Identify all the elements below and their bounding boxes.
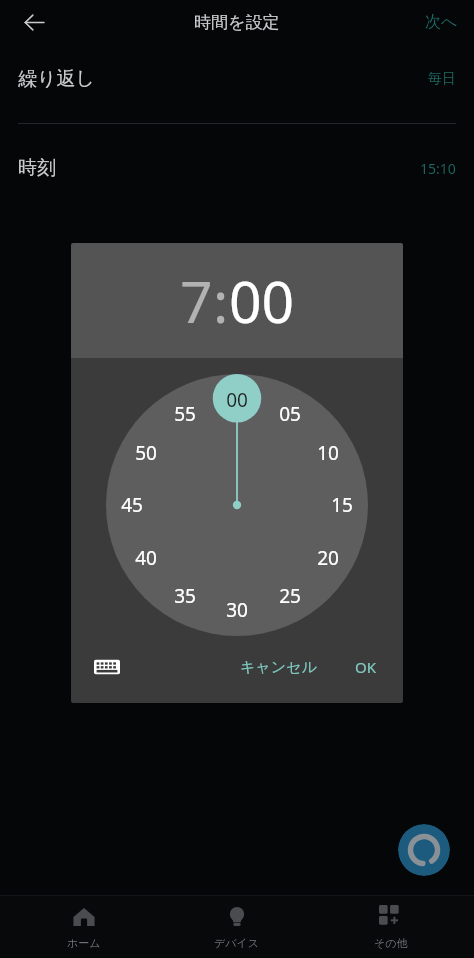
button[interactable]: Alexa voice assistant [398,824,450,876]
staticText: デバイス [214,936,260,950]
staticText: 40 [135,545,157,571]
staticText: OK [355,657,377,677]
button[interactable]: OK [343,648,389,686]
staticText: 7 [180,262,213,340]
staticText: 毎日 [428,70,456,88]
staticText: 次へ [425,12,458,32]
button[interactable]: 繰り返し [0,44,474,123]
staticText: 繰り返し [18,67,95,91]
button[interactable]: 40 [129,541,163,575]
staticText: 50 [135,440,157,466]
staticText: 00 [226,387,248,413]
button[interactable]: キャンセル [228,649,329,686]
staticText: 15 [331,492,353,518]
button[interactable]: 35 [168,579,202,613]
staticText: 20 [317,545,339,571]
staticText: 25 [279,583,301,609]
button[interactable]: その他 [321,896,461,958]
staticText: 00 [229,262,295,340]
button[interactable]: 30 [220,593,254,627]
button[interactable]: 00 [229,262,295,340]
button[interactable]: 15 [325,488,359,522]
button[interactable]: 55 [168,397,202,431]
button[interactable]: 00 [220,383,254,417]
button[interactable]: ホーム [14,896,154,958]
staticText: その他 [374,936,408,950]
staticText: 55 [174,401,196,427]
button[interactable]: 7 [180,262,213,340]
staticText: 10 [317,440,339,466]
staticText: ホーム [67,936,101,950]
button[interactable]: 25 [273,579,307,613]
button[interactable]: 20 [311,541,345,575]
button[interactable]: 次へ [409,4,474,40]
button[interactable]: 05 [273,397,307,431]
staticText: 05 [279,401,301,427]
staticText: 時刻 [18,156,56,180]
staticText: 30 [226,597,248,623]
staticText: 時間を設定 [194,12,280,33]
button[interactable]: 45 [115,488,149,522]
button[interactable]: 時刻 [0,124,474,212]
button[interactable]: 10 [311,436,345,470]
button[interactable]: Back [14,2,54,42]
button[interactable]: Switch to keyboard input [85,645,129,689]
staticText: : [213,262,229,340]
button[interactable]: 50 [129,436,163,470]
staticText: 45 [121,492,143,518]
staticText: 35 [174,583,196,609]
staticText: 15:10 [420,159,456,178]
button[interactable]: デバイス [167,896,307,958]
staticText: キャンセル [240,658,317,677]
